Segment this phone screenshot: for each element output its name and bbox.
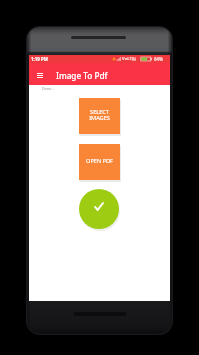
staticText: SELECT IMAGES (89, 108, 110, 122)
staticText: 64% (154, 56, 163, 62)
button[interactable]: Done, create PDF (79, 189, 119, 229)
staticText: 1:19 PM (31, 56, 48, 62)
button[interactable]: OPEN PDF (79, 144, 120, 180)
button[interactable]: SELECT IMAGES (79, 98, 120, 134)
staticText: Image To Pdf (56, 70, 108, 81)
staticText: OPEN PDF (86, 157, 113, 165)
button[interactable]: Open navigation menu (32, 67, 48, 83)
staticText: VoLTE (122, 56, 135, 62)
staticText: Done... (42, 86, 54, 91)
